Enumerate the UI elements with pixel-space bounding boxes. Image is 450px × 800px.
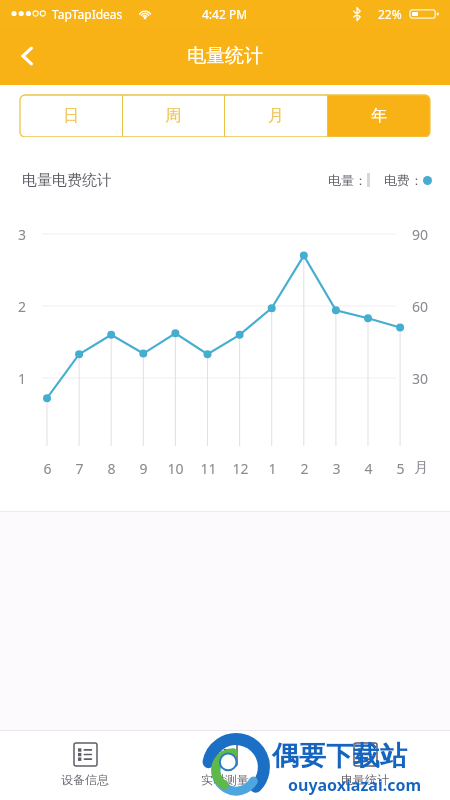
- button[interactable]: 电量统计: [310, 730, 420, 800]
- button[interactable]: 月: [224, 95, 327, 137]
- staticText: 电量电费统计: [22, 171, 112, 190]
- staticText: 22%: [378, 6, 402, 22]
- button[interactable]: Back: [0, 27, 54, 85]
- staticText: 4:42 PM: [202, 6, 248, 22]
- staticText: 2: [18, 297, 27, 316]
- staticText: 月: [268, 106, 284, 126]
- staticText: 电量统计: [341, 772, 389, 787]
- staticText: 6: [43, 459, 52, 478]
- button[interactable]: 周: [122, 95, 224, 137]
- staticText: 12: [232, 459, 249, 478]
- staticText: 10: [167, 459, 184, 478]
- staticText: 60: [412, 297, 429, 316]
- button[interactable]: 年: [327, 95, 430, 137]
- staticText: 周: [165, 106, 181, 126]
- staticText: 设备信息: [61, 772, 109, 787]
- staticText: 30: [412, 369, 429, 388]
- staticText: 1: [268, 459, 277, 478]
- staticText: 11: [200, 459, 217, 478]
- staticText: 电费：: [384, 172, 423, 188]
- staticText: 5: [396, 459, 405, 478]
- staticText: 月: [414, 459, 428, 477]
- staticText: 实时测量: [201, 772, 249, 787]
- staticText: 7: [75, 459, 84, 478]
- staticText: ouyaoxiazai.com: [288, 774, 422, 796]
- staticText: 4: [364, 459, 373, 478]
- staticText: 8: [107, 459, 116, 478]
- button[interactable]: 实时测量: [170, 730, 280, 800]
- staticText: 1: [18, 369, 27, 388]
- staticText: 电量统计: [187, 44, 263, 68]
- staticText: 电量：: [328, 172, 367, 188]
- staticText: 3: [18, 225, 27, 244]
- button[interactable]: 设备信息: [30, 730, 140, 800]
- staticText: TapTapIdeas: [52, 6, 123, 22]
- staticText: 日: [63, 106, 79, 126]
- staticText: 年: [371, 106, 387, 126]
- staticText: 3: [332, 459, 341, 478]
- staticText: 90: [412, 225, 429, 244]
- button[interactable]: 日: [20, 95, 122, 137]
- staticText: 偶要下载站: [272, 739, 407, 773]
- staticText: 2: [300, 459, 309, 478]
- staticText: 9: [139, 459, 148, 478]
